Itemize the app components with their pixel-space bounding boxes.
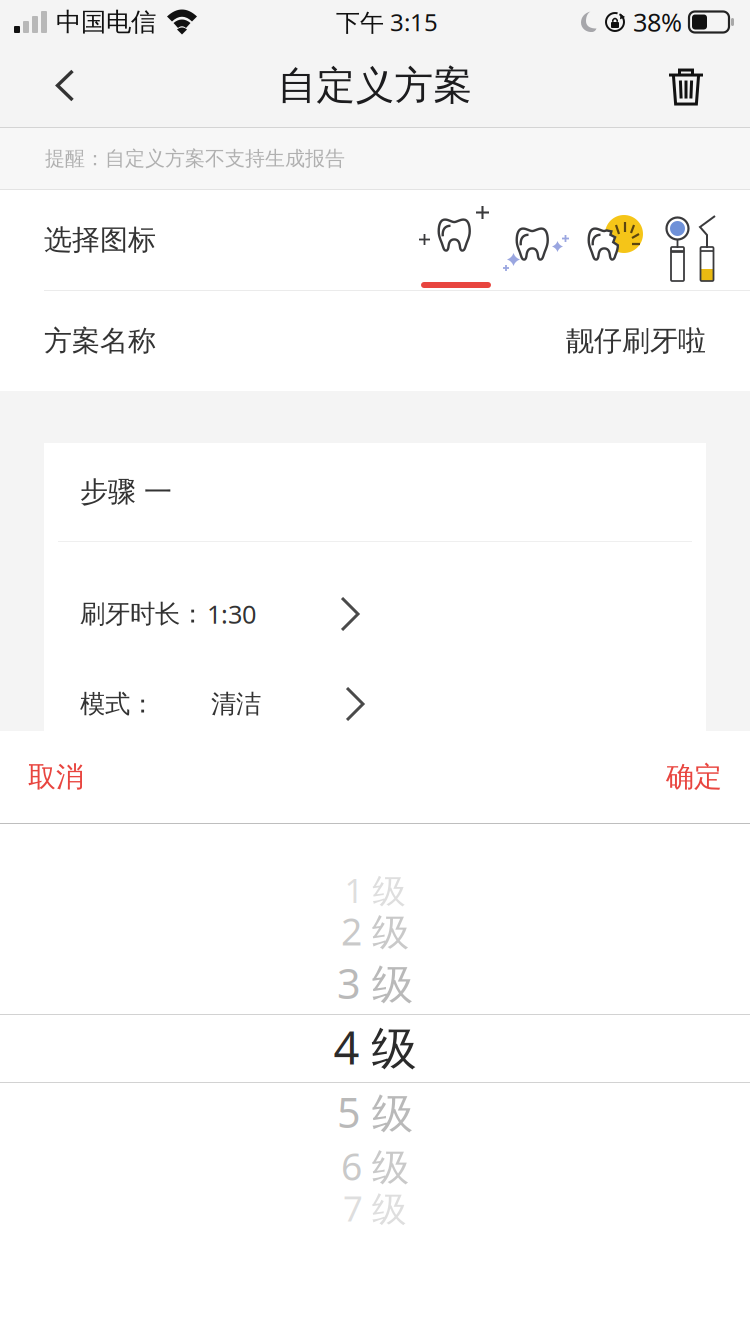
staticText: 6 级 xyxy=(341,1141,409,1191)
staticText: 靓仔刷牙啦 xyxy=(566,324,706,358)
staticText: 中国电信 xyxy=(56,6,156,37)
staticText: 7 级 xyxy=(343,1185,407,1231)
staticText: 自定义方案 xyxy=(277,62,472,109)
button[interactable]: Dental tools icon xyxy=(651,213,729,279)
staticText: 提醒：自定义方案不支持生成报告 xyxy=(45,146,345,171)
button[interactable]: 取消 xyxy=(0,731,112,823)
button[interactable]: 确定 xyxy=(638,731,750,823)
staticText: 选择图标 xyxy=(44,223,156,257)
staticText: 取消 xyxy=(28,760,84,794)
button[interactable]: Tooth icon xyxy=(417,204,495,288)
button[interactable]: 模式： xyxy=(44,659,706,749)
button[interactable]: Sparkling tooth icon xyxy=(495,213,573,279)
staticText: 刷牙时长： xyxy=(80,598,205,629)
staticText: 2 级 xyxy=(341,906,409,956)
staticText: 清洁 xyxy=(211,688,261,719)
button[interactable]: 刷牙时长： xyxy=(44,569,706,659)
staticText: 3 级 xyxy=(337,956,413,1010)
staticText: 38% xyxy=(633,5,682,39)
staticText: 步骤 一 xyxy=(80,475,172,509)
button[interactable]: Delete xyxy=(658,51,750,119)
button[interactable]: Toothache icon xyxy=(573,213,651,279)
staticText: 1 级 xyxy=(344,868,405,912)
staticText: 下午 3:15 xyxy=(336,6,438,38)
staticText: 模式： xyxy=(80,688,155,719)
staticText: 确定 xyxy=(666,760,722,794)
button[interactable]: Back xyxy=(0,51,93,119)
staticText: 1:30 xyxy=(207,597,256,631)
staticText: 4 级 xyxy=(333,1017,416,1077)
staticText: 方案名称 xyxy=(44,324,156,358)
staticText: 5 级 xyxy=(337,1085,413,1139)
